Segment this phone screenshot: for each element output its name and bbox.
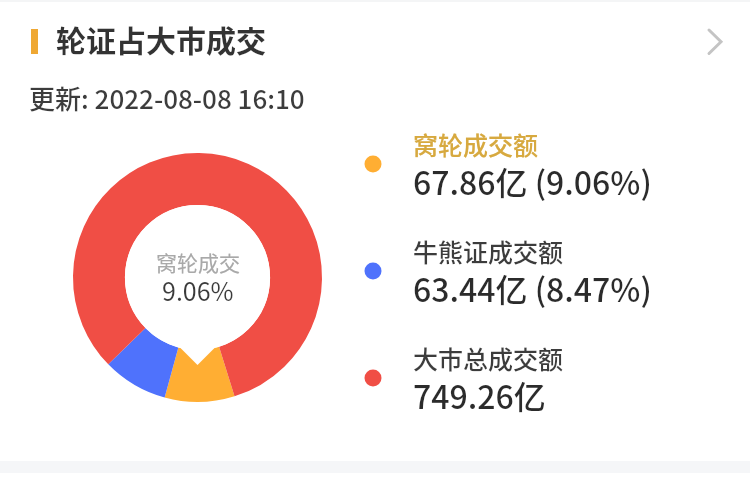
staticText: 窝轮成交额 [413, 126, 539, 162]
other: More [688, 18, 736, 66]
button[interactable]: 牛熊证成交额 [360, 237, 690, 333]
button[interactable]: 轮证占大市成交 [0, 0, 750, 78]
staticText: 轮证占大市成交 [56, 17, 266, 60]
staticText: 窝轮成交 [156, 247, 240, 277]
staticText: 牛熊证成交额 [413, 233, 564, 269]
button[interactable]: 大市总成交额 [360, 344, 690, 440]
staticText: 大市总成交额 [413, 340, 564, 376]
staticText: 67.86亿 (9.06%) [413, 158, 652, 204]
staticText: 更新: 2022-08-08 16:10 [29, 79, 305, 117]
staticText: 9.06% [162, 272, 234, 308]
staticText: 749.26亿 [413, 372, 546, 418]
button[interactable]: 窝轮成交额 [360, 130, 690, 226]
staticText: 63.44亿 (8.47%) [413, 265, 652, 311]
